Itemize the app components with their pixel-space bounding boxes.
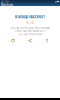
- staticText: Backup Success?: [15, 15, 45, 19]
- button[interactable]: Back up now: [42, 38, 51, 43]
- staticText: 0 / 0: [26, 21, 33, 25]
- staticText: CallLogs 16777216 bytes: [18, 33, 42, 36]
- button[interactable]: Share: [25, 38, 34, 43]
- staticText: CallLogs 16777216 bytes and 0 messages: [10, 27, 50, 29]
- button[interactable]: Restore: [8, 38, 17, 43]
- staticText: Backup: [1, 2, 13, 7]
- staticText: 0 bytes have been backed up to: [15, 30, 45, 33]
- staticText: 12:30: [1, 0, 9, 3]
